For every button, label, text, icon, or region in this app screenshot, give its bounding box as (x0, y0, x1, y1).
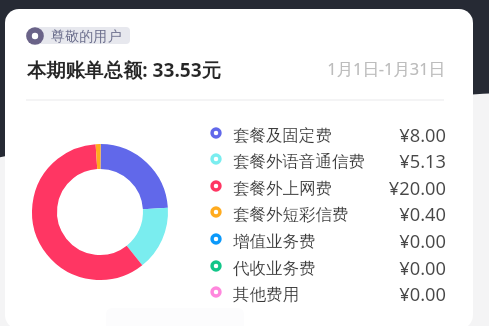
button[interactable]: 套餐外短彩信费 (206, 201, 446, 227)
staticText: ¥0.40 (340, 201, 446, 226)
staticText: 增值业务费 (233, 231, 316, 252)
button[interactable]: 套餐外语音通信费 (206, 148, 446, 174)
staticText: 套餐及固定费 (233, 125, 332, 146)
staticText: ¥0.00 (340, 255, 446, 280)
staticText: 1月1日-1月31日 (300, 57, 445, 79)
staticText: 代收业务费 (233, 258, 316, 279)
staticText: 套餐外上网费 (233, 178, 332, 199)
button[interactable]: 其他费用 (206, 281, 446, 307)
staticText: 尊敬的用户 (51, 27, 122, 44)
staticText: 其他费用 (233, 284, 299, 305)
staticText: ¥20.00 (340, 175, 446, 200)
staticText: ¥0.00 (340, 281, 446, 306)
staticText: 本期账单总额: 33.53元 (27, 56, 221, 82)
staticText: 套餐外短彩信费 (233, 204, 349, 225)
other: 用户等级 (26, 27, 44, 45)
staticText: ¥8.00 (340, 122, 446, 147)
button[interactable]: 尊敬的用户 (30, 27, 130, 44)
button[interactable]: 套餐外上网费 (206, 175, 446, 201)
staticText: 套餐外语音通信费 (233, 151, 365, 172)
button[interactable]: 增值业务费 (206, 228, 446, 254)
staticText: ¥5.13 (340, 148, 446, 173)
button[interactable]: 套餐及固定费 (206, 122, 446, 148)
button[interactable]: 代收业务费 (206, 255, 446, 281)
staticText: ¥0.00 (340, 228, 446, 253)
